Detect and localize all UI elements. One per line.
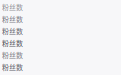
staticText: 粉丝数 <box>2 38 23 48</box>
staticText: 粉丝数 <box>2 14 23 24</box>
staticText: 粉丝数 <box>2 62 23 72</box>
staticText: 粉丝数 <box>2 2 23 12</box>
staticText: 粉丝数 <box>2 50 23 60</box>
staticText: 粉丝数 <box>2 26 23 36</box>
